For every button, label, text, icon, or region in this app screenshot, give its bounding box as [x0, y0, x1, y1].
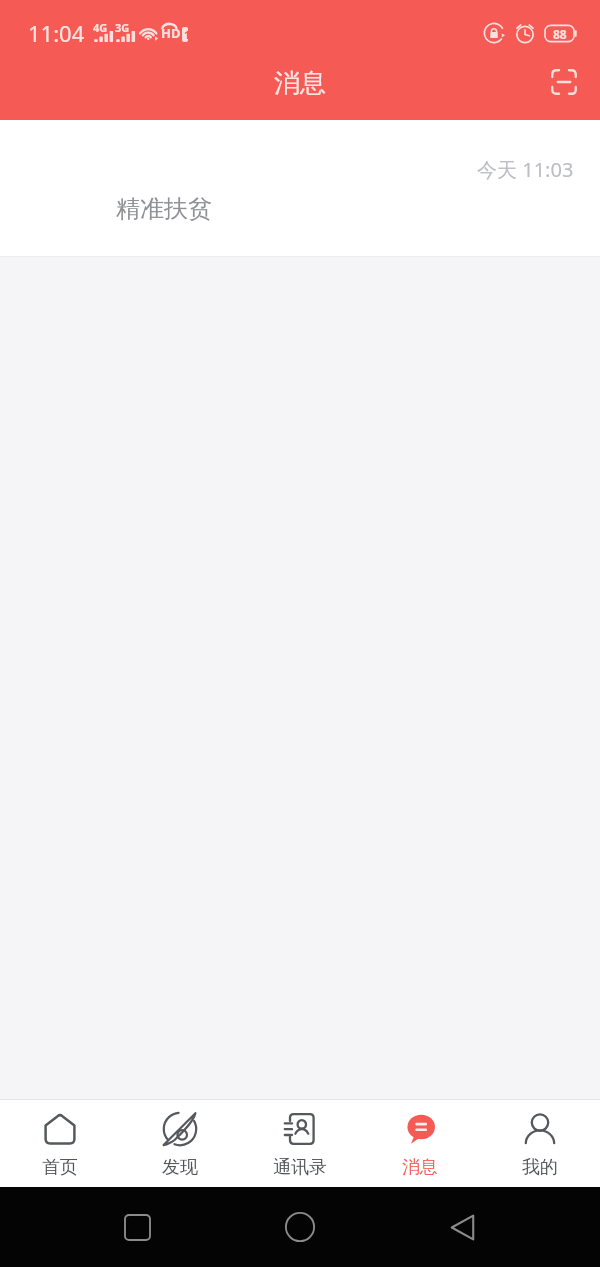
button[interactable]: 通讯录 [240, 1100, 360, 1187]
button[interactable]: Recent apps [113, 1203, 161, 1251]
button[interactable]: 首页 [0, 1100, 120, 1187]
button[interactable]: 我的 [480, 1100, 600, 1187]
staticText: 我的 [522, 1156, 558, 1179]
staticText: 1 [184, 27, 186, 42]
staticText: 发现 [162, 1156, 198, 1179]
staticText: 消息 [274, 67, 326, 100]
button[interactable]: 今天 11:03 [0, 120, 600, 257]
button[interactable]: Back [438, 1203, 486, 1251]
staticText: 11:04 [28, 18, 85, 48]
staticText: HD [161, 24, 181, 42]
button[interactable]: Scan QR code [538, 56, 590, 108]
staticText: 88 [553, 26, 567, 42]
button[interactable]: 消息 [360, 1100, 480, 1187]
staticText: 通讯录 [273, 1156, 327, 1179]
staticText: 消息 [402, 1156, 438, 1179]
staticText: 4G [93, 20, 108, 35]
staticText: 3G [115, 20, 130, 35]
button[interactable]: 发现 [120, 1100, 240, 1187]
button[interactable]: Home [276, 1203, 324, 1251]
staticText: 首页 [42, 1156, 78, 1179]
staticText: 精准扶贫 [116, 194, 212, 224]
staticText: 今天 11:03 [477, 156, 574, 183]
